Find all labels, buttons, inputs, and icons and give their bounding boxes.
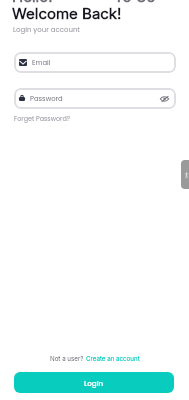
- button[interactable]: Email: [14, 52, 176, 73]
- staticText: Email: [32, 58, 51, 68]
- staticText: Hello!: [12, 0, 53, 5]
- button[interactable]: Login: [14, 372, 174, 393]
- button[interactable]: Password: [14, 88, 176, 109]
- button[interactable]: Show password: [159, 94, 169, 104]
- staticText: Login your account: [13, 25, 80, 35]
- staticText: To Us: [114, 0, 155, 5]
- staticText: Password: [30, 94, 63, 104]
- button[interactable]: Create an account: [86, 355, 140, 363]
- staticText: Not a user?: [50, 355, 86, 363]
- staticText: Login: [84, 378, 104, 388]
- staticText: Welcome Back!: [12, 4, 122, 22]
- button[interactable]: Accessibility options: [181, 160, 189, 189]
- button[interactable]: Forget Password?: [14, 114, 71, 123]
